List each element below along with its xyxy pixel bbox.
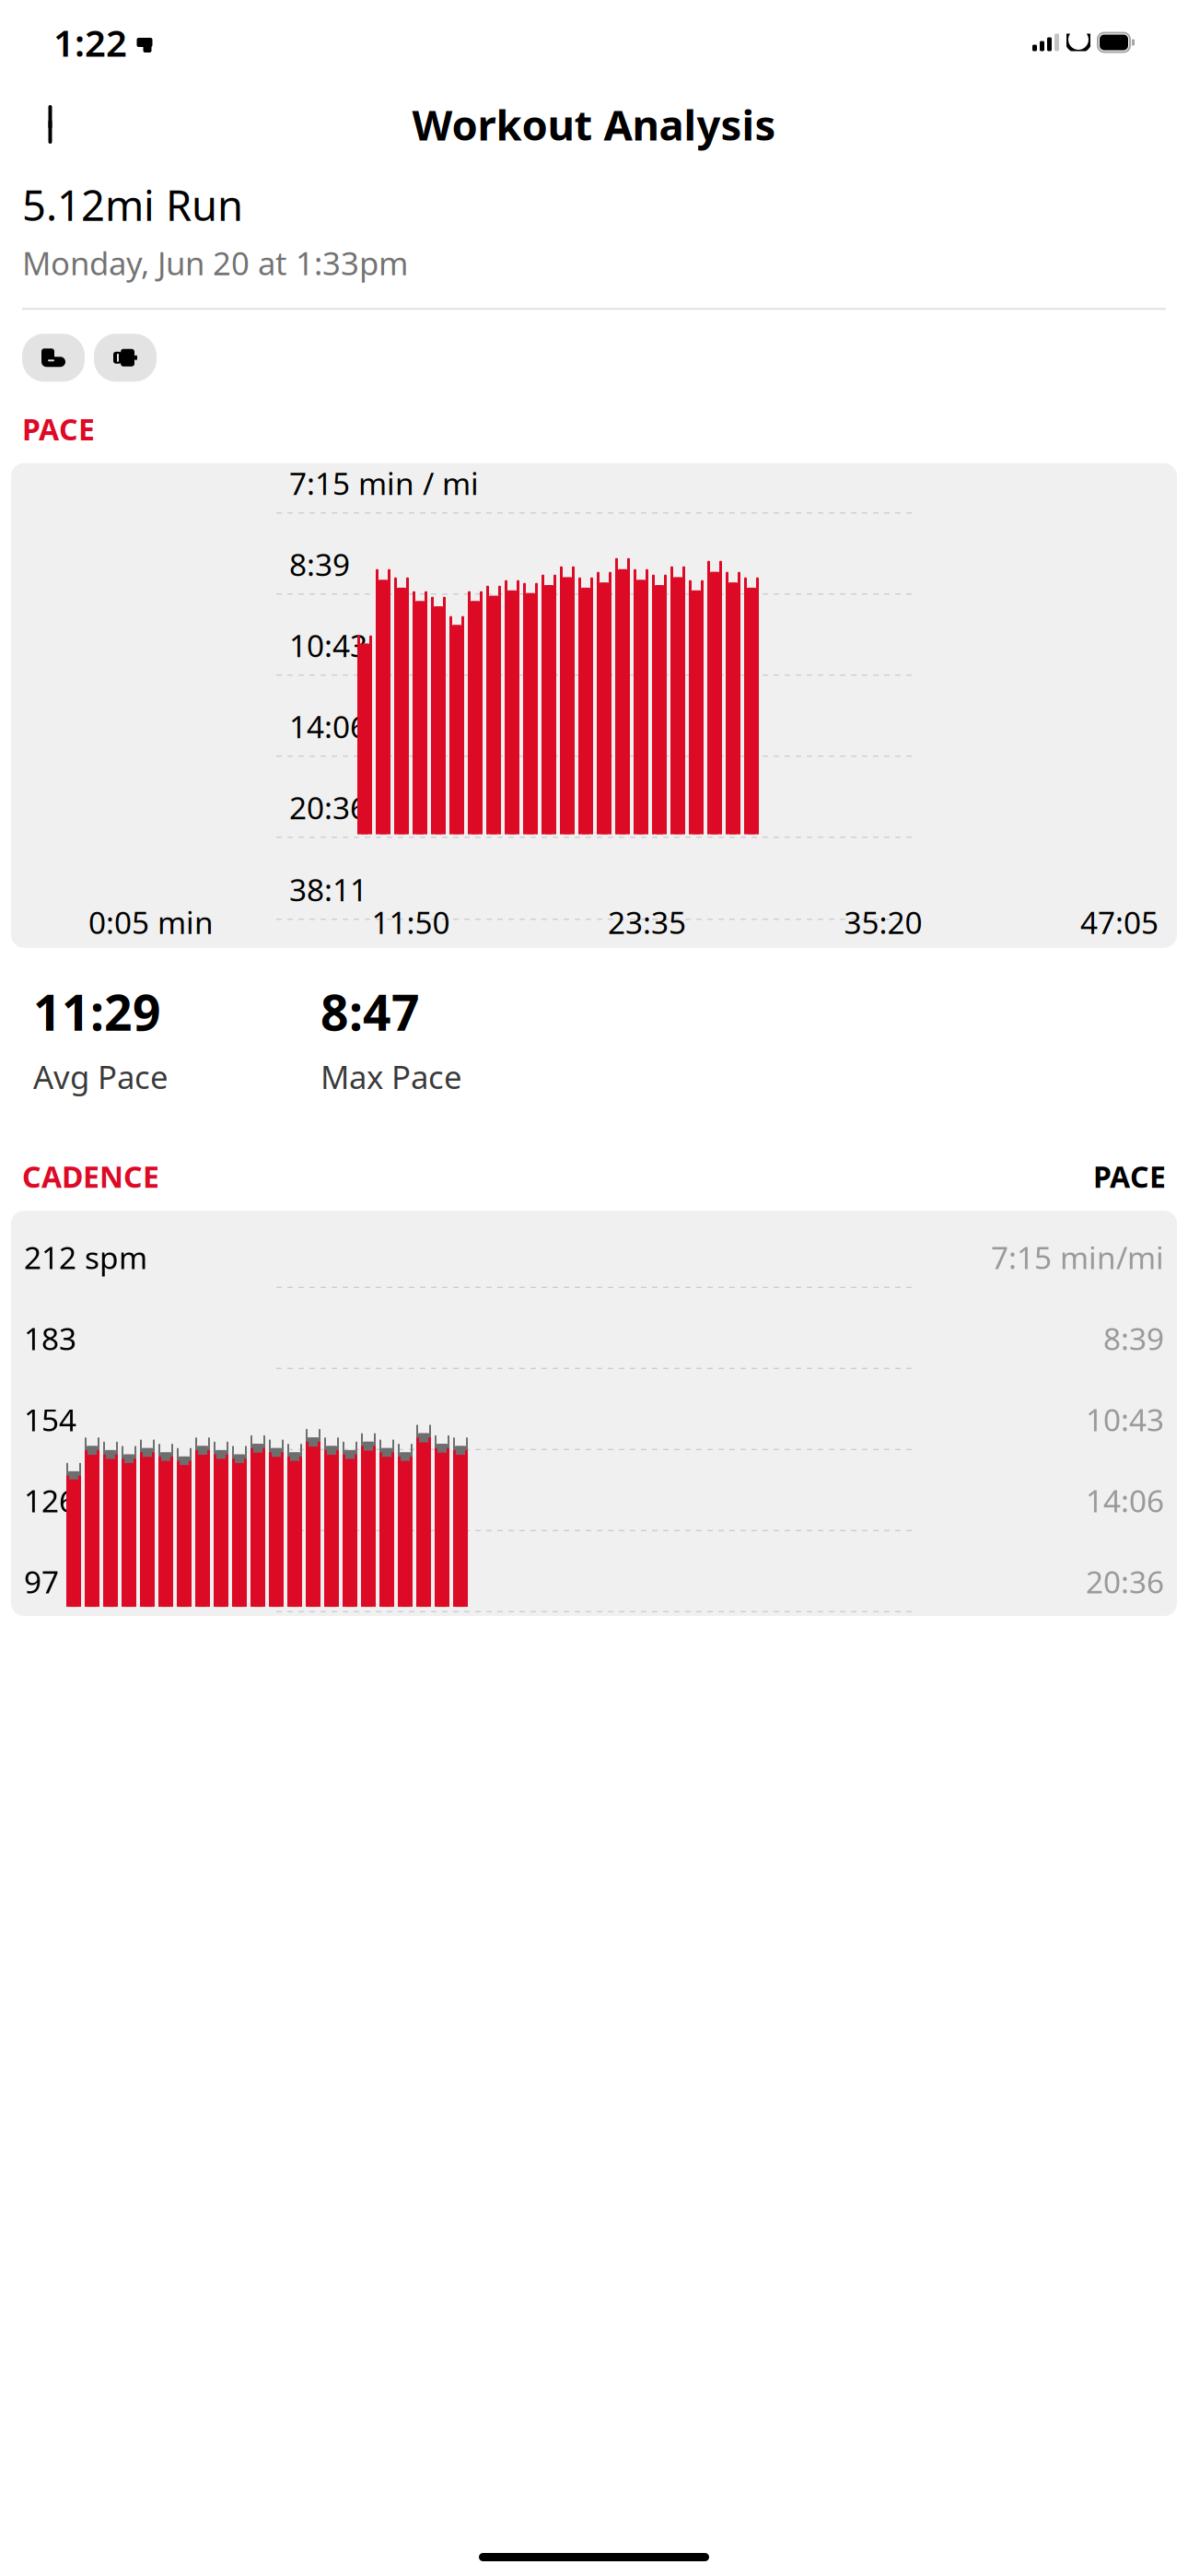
staticText: 20:36 (289, 787, 367, 828)
button[interactable]: Shoes (22, 334, 85, 382)
staticText: PACE (1093, 1157, 1166, 1196)
staticText: 11:29 (33, 979, 161, 1044)
staticText: CADENCE (22, 1157, 159, 1196)
button[interactable]: Audio feedback (94, 334, 157, 382)
staticText: Monday, Jun 20 at 1:33pm (22, 242, 408, 284)
staticText: 183 (24, 1318, 76, 1359)
staticText: 5.12mi Run (22, 177, 243, 232)
staticText: 154 (24, 1399, 76, 1440)
staticText: 8:39 (289, 544, 350, 584)
staticText: 7:15 min / mi (289, 463, 479, 503)
staticText: 126 (24, 1480, 76, 1521)
staticText: 11:50 (372, 902, 450, 942)
staticText: 10:43 (1086, 1399, 1164, 1440)
staticText: 0:05 min (88, 902, 214, 942)
staticText: 23:35 (608, 902, 686, 942)
button[interactable]: Back (22, 96, 87, 153)
staticText: PACE (22, 409, 95, 448)
staticText: 1:22 (53, 18, 127, 67)
staticText: 97 (24, 1561, 59, 1602)
staticText: 8:39 (1103, 1318, 1164, 1359)
staticText: 20:36 (1086, 1561, 1164, 1602)
staticText: Avg Pace (33, 1055, 169, 1098)
staticText: 47:05 (1080, 902, 1159, 942)
staticText: Max Pace (320, 1055, 462, 1098)
staticText: 38:11 (289, 869, 367, 910)
staticText: 7:15 min/mi (991, 1237, 1164, 1278)
staticText: 14:06 (1086, 1480, 1164, 1521)
staticText: 35:20 (844, 902, 922, 942)
staticText: 14:06 (289, 706, 367, 747)
staticText: Workout Analysis (412, 97, 776, 152)
staticText: 212 spm (24, 1237, 147, 1278)
staticText: 8:47 (320, 979, 420, 1044)
staticText: 10:43 (289, 625, 367, 666)
